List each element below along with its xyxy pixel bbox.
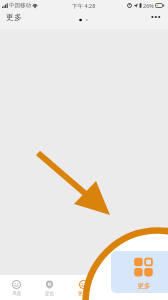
- staticText: 26%: [143, 2, 154, 9]
- button[interactable]: 更多: [66, 275, 100, 300]
- button[interactable]: 更多: [111, 251, 168, 293]
- button[interactable]: More options: [146, 11, 168, 25]
- button[interactable]: 定位: [33, 275, 66, 300]
- staticText: 中国移动: [9, 2, 31, 9]
- button[interactable]: 设置: [100, 275, 134, 300]
- staticText: 设置: [112, 291, 122, 297]
- staticText: 贝壳: [12, 291, 22, 297]
- button[interactable]: 贝壳: [0, 275, 33, 300]
- staticText: 更多: [6, 12, 22, 22]
- staticText: 定位: [45, 291, 55, 297]
- staticText: 下午 4:28: [72, 2, 96, 10]
- staticText: 我的: [146, 291, 156, 297]
- staticText: 更多: [134, 282, 154, 290]
- staticText: 更多: [78, 291, 88, 297]
- button[interactable]: 我的: [134, 275, 168, 300]
